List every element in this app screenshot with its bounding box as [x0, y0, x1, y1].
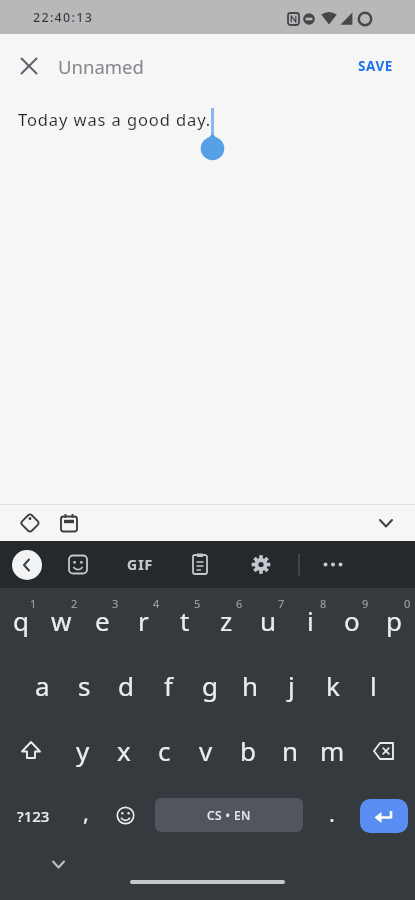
- button[interactable]: o: [331, 588, 373, 653]
- button[interactable]: ?123: [0, 783, 66, 848]
- staticText: u: [260, 603, 277, 638]
- button[interactable]: e: [82, 588, 123, 653]
- button[interactable]: [130, 880, 285, 884]
- staticText: v: [199, 733, 213, 768]
- button[interactable]: b: [227, 718, 269, 783]
- staticText: 6: [236, 596, 243, 611]
- button[interactable]: f: [147, 653, 189, 718]
- staticText: y: [76, 733, 90, 768]
- button[interactable]: [12, 505, 48, 541]
- button[interactable]: w: [41, 588, 82, 653]
- staticText: c: [158, 733, 171, 768]
- staticText: g: [202, 668, 218, 703]
- button[interactable]: [106, 783, 145, 848]
- staticText: 9: [362, 596, 369, 611]
- staticText: e: [95, 603, 110, 638]
- staticText: o: [344, 603, 360, 638]
- staticText: Unnamed: [58, 54, 144, 79]
- button[interactable]: z: [205, 588, 247, 653]
- button[interactable]: j: [271, 653, 312, 718]
- staticText: l: [370, 668, 377, 703]
- button[interactable]: GIF: [127, 555, 154, 574]
- button[interactable]: [370, 507, 402, 539]
- button[interactable]: r: [123, 588, 164, 653]
- button[interactable]: [51, 505, 87, 541]
- staticText: 0: [404, 596, 411, 611]
- staticText: ?123: [17, 806, 50, 826]
- staticText: 4: [153, 596, 160, 611]
- staticText: d: [118, 668, 134, 703]
- staticText: 5: [194, 596, 201, 611]
- staticText: m: [320, 733, 345, 768]
- button[interactable]: l: [353, 653, 394, 718]
- button[interactable]: [360, 799, 408, 833]
- staticText: 8: [320, 596, 327, 611]
- button[interactable]: s: [63, 653, 105, 718]
- staticText: 1: [30, 596, 37, 611]
- button[interactable]: x: [103, 718, 144, 783]
- button[interactable]: v: [185, 718, 227, 783]
- staticText: w: [51, 603, 72, 638]
- button[interactable]: y: [62, 718, 103, 783]
- staticText: i: [307, 603, 314, 638]
- button[interactable]: q: [0, 588, 41, 653]
- button[interactable]: [42, 848, 74, 880]
- button[interactable]: [12, 550, 42, 580]
- button[interactable]: .: [311, 783, 352, 848]
- button[interactable]: d: [105, 653, 147, 718]
- button[interactable]: h: [230, 653, 271, 718]
- staticText: CS • EN: [207, 807, 251, 823]
- button[interactable]: a: [21, 653, 63, 718]
- staticText: 2: [71, 596, 78, 611]
- staticText: k: [326, 668, 340, 703]
- staticText: .: [329, 798, 335, 828]
- button[interactable]: c: [144, 718, 185, 783]
- staticText: ,: [83, 797, 89, 827]
- staticText: z: [220, 603, 233, 638]
- button[interactable]: n: [269, 718, 311, 783]
- staticText: h: [242, 668, 259, 703]
- staticText: 7: [278, 596, 285, 611]
- button[interactable]: [0, 718, 62, 783]
- staticText: f: [164, 668, 173, 703]
- button[interactable]: p: [373, 588, 415, 653]
- staticText: p: [386, 603, 402, 638]
- staticText: j: [288, 668, 295, 703]
- button[interactable]: [353, 718, 415, 783]
- button[interactable]: ,: [66, 783, 106, 848]
- button[interactable]: SAVE: [348, 49, 403, 83]
- button[interactable]: g: [189, 653, 230, 718]
- staticText: SAVE: [358, 57, 393, 75]
- button[interactable]: [9, 46, 49, 86]
- button[interactable]: u: [247, 588, 289, 653]
- staticText: a: [35, 668, 50, 703]
- button[interactable]: CS • EN: [155, 798, 303, 832]
- staticText: r: [138, 603, 149, 638]
- staticText: Today was a good day.: [18, 108, 212, 130]
- staticText: q: [13, 603, 29, 638]
- staticText: x: [117, 733, 131, 768]
- staticText: 3: [112, 596, 119, 611]
- button[interactable]: m: [311, 718, 353, 783]
- button[interactable]: k: [312, 653, 353, 718]
- staticText: b: [240, 733, 256, 768]
- staticText: t: [180, 603, 190, 638]
- button[interactable]: i: [289, 588, 331, 653]
- button[interactable]: t: [164, 588, 205, 653]
- staticText: 22:40:13: [33, 9, 94, 26]
- staticText: s: [78, 668, 91, 703]
- staticText: n: [282, 733, 299, 768]
